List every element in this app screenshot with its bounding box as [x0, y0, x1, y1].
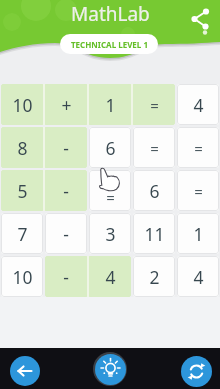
button[interactable]: =	[133, 127, 175, 168]
button[interactable]: 2	[133, 256, 175, 297]
staticText: =	[194, 181, 203, 201]
staticText: 5	[17, 179, 28, 203]
staticText: 1	[105, 93, 116, 117]
staticText: -	[63, 222, 69, 246]
staticText: -	[63, 179, 69, 203]
button[interactable]: -	[45, 170, 87, 211]
button[interactable]: 4	[177, 256, 219, 297]
button[interactable]: +	[45, 84, 87, 125]
staticText: 1	[193, 222, 204, 246]
staticText: +	[61, 93, 72, 117]
staticText: =	[150, 138, 159, 158]
staticText: 3	[105, 222, 116, 246]
staticText: 2	[149, 265, 160, 289]
staticText: =	[194, 138, 203, 158]
button[interactable]: 10	[1, 84, 43, 125]
staticText: 11	[144, 222, 165, 246]
staticText: TECHNICAL LEVEL 1	[71, 39, 148, 50]
staticText: MathLab	[71, 1, 150, 27]
button[interactable]: -	[45, 256, 87, 297]
button[interactable]: TECHNICAL LEVEL 1	[60, 34, 158, 54]
staticText: =	[150, 95, 159, 115]
button[interactable]: =	[89, 170, 131, 211]
button[interactable]: =	[133, 84, 175, 125]
button[interactable]: -	[45, 213, 87, 254]
button[interactable]	[181, 356, 212, 387]
staticText: 10	[12, 93, 33, 117]
staticText: 10	[12, 265, 33, 289]
button[interactable]: 4	[89, 256, 131, 297]
button[interactable]: 1	[177, 213, 219, 254]
button[interactable]: 8	[1, 127, 43, 168]
staticText: 6	[149, 179, 160, 203]
button[interactable]: 4	[177, 84, 219, 125]
staticText: =	[106, 187, 115, 207]
staticText: -	[63, 265, 69, 289]
button[interactable]: 1	[89, 84, 131, 125]
staticText: 7	[17, 222, 28, 246]
button[interactable]	[93, 352, 127, 386]
button[interactable]: 6	[89, 127, 131, 168]
button[interactable]	[188, 6, 214, 32]
button[interactable]: 7	[1, 213, 43, 254]
staticText: -	[63, 136, 69, 160]
button[interactable]: -	[45, 127, 87, 168]
staticText: 8	[17, 136, 28, 160]
button[interactable]: 5	[1, 170, 43, 211]
button[interactable]: =	[177, 170, 219, 211]
button[interactable]: =	[177, 127, 219, 168]
staticText: 6	[105, 136, 116, 160]
button[interactable]: 10	[1, 256, 43, 297]
button[interactable]: 11	[133, 213, 175, 254]
button[interactable]	[10, 356, 40, 386]
staticText: 4	[193, 93, 204, 117]
button[interactable]: 3	[89, 213, 131, 254]
button[interactable]: 6	[133, 170, 175, 211]
staticText: 4	[193, 265, 204, 289]
staticText: 4	[105, 265, 116, 289]
